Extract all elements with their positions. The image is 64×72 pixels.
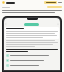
button[interactable]	[44, 1, 57, 4]
button[interactable]: Brand	[6, 2, 15, 4]
button[interactable]: Announcement	[47, 6, 62, 8]
button[interactable]: Menu	[58, 2, 62, 3]
button[interactable]: Status	[24, 23, 39, 26]
button[interactable]: Home	[2, 1, 5, 4]
button[interactable]	[5, 27, 59, 39]
button[interactable]	[6, 59, 58, 62]
button[interactable]	[6, 54, 58, 57]
button[interactable]	[6, 64, 58, 67]
